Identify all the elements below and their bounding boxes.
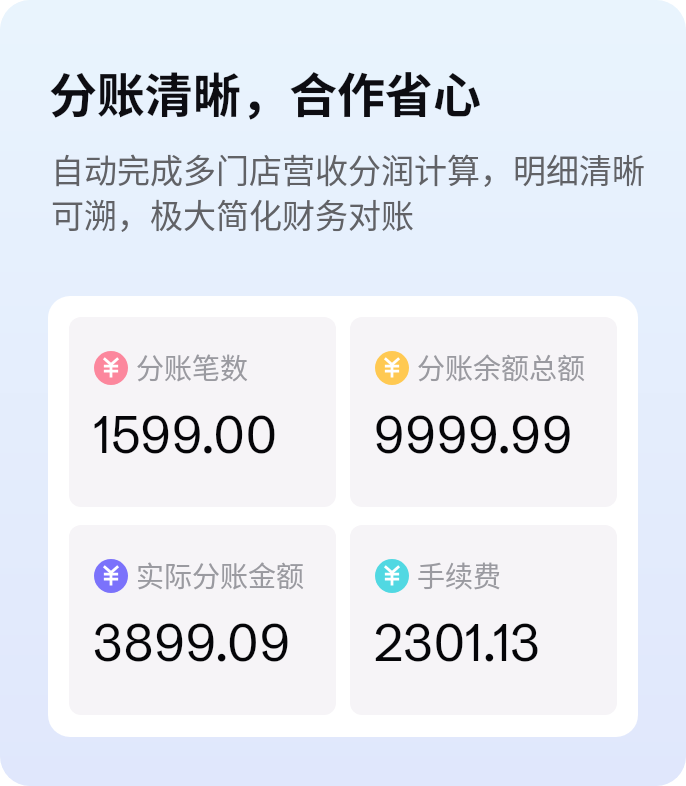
- button[interactable]: 分账余额总额: [350, 317, 617, 507]
- staticText: 分账清晰，合作省心: [49, 57, 482, 127]
- button[interactable]: 实际分账金额: [69, 525, 336, 715]
- staticText: 2301.13: [374, 611, 540, 674]
- button[interactable]: 手续费: [350, 525, 617, 715]
- staticText: 分账笔数: [136, 347, 249, 388]
- staticText: 手续费: [417, 555, 502, 596]
- staticText: 分账余额总额: [417, 347, 586, 388]
- staticText: 实际分账金额: [136, 555, 305, 596]
- staticText: 9999.99: [374, 403, 573, 466]
- staticText: 1599.00: [93, 403, 278, 466]
- staticText: 3899.09: [93, 611, 290, 674]
- staticText: 自动完成多门店营收分润计算，明细清晰 可溯，极大简化财务对账: [51, 145, 645, 238]
- button[interactable]: 分账笔数: [69, 317, 336, 507]
